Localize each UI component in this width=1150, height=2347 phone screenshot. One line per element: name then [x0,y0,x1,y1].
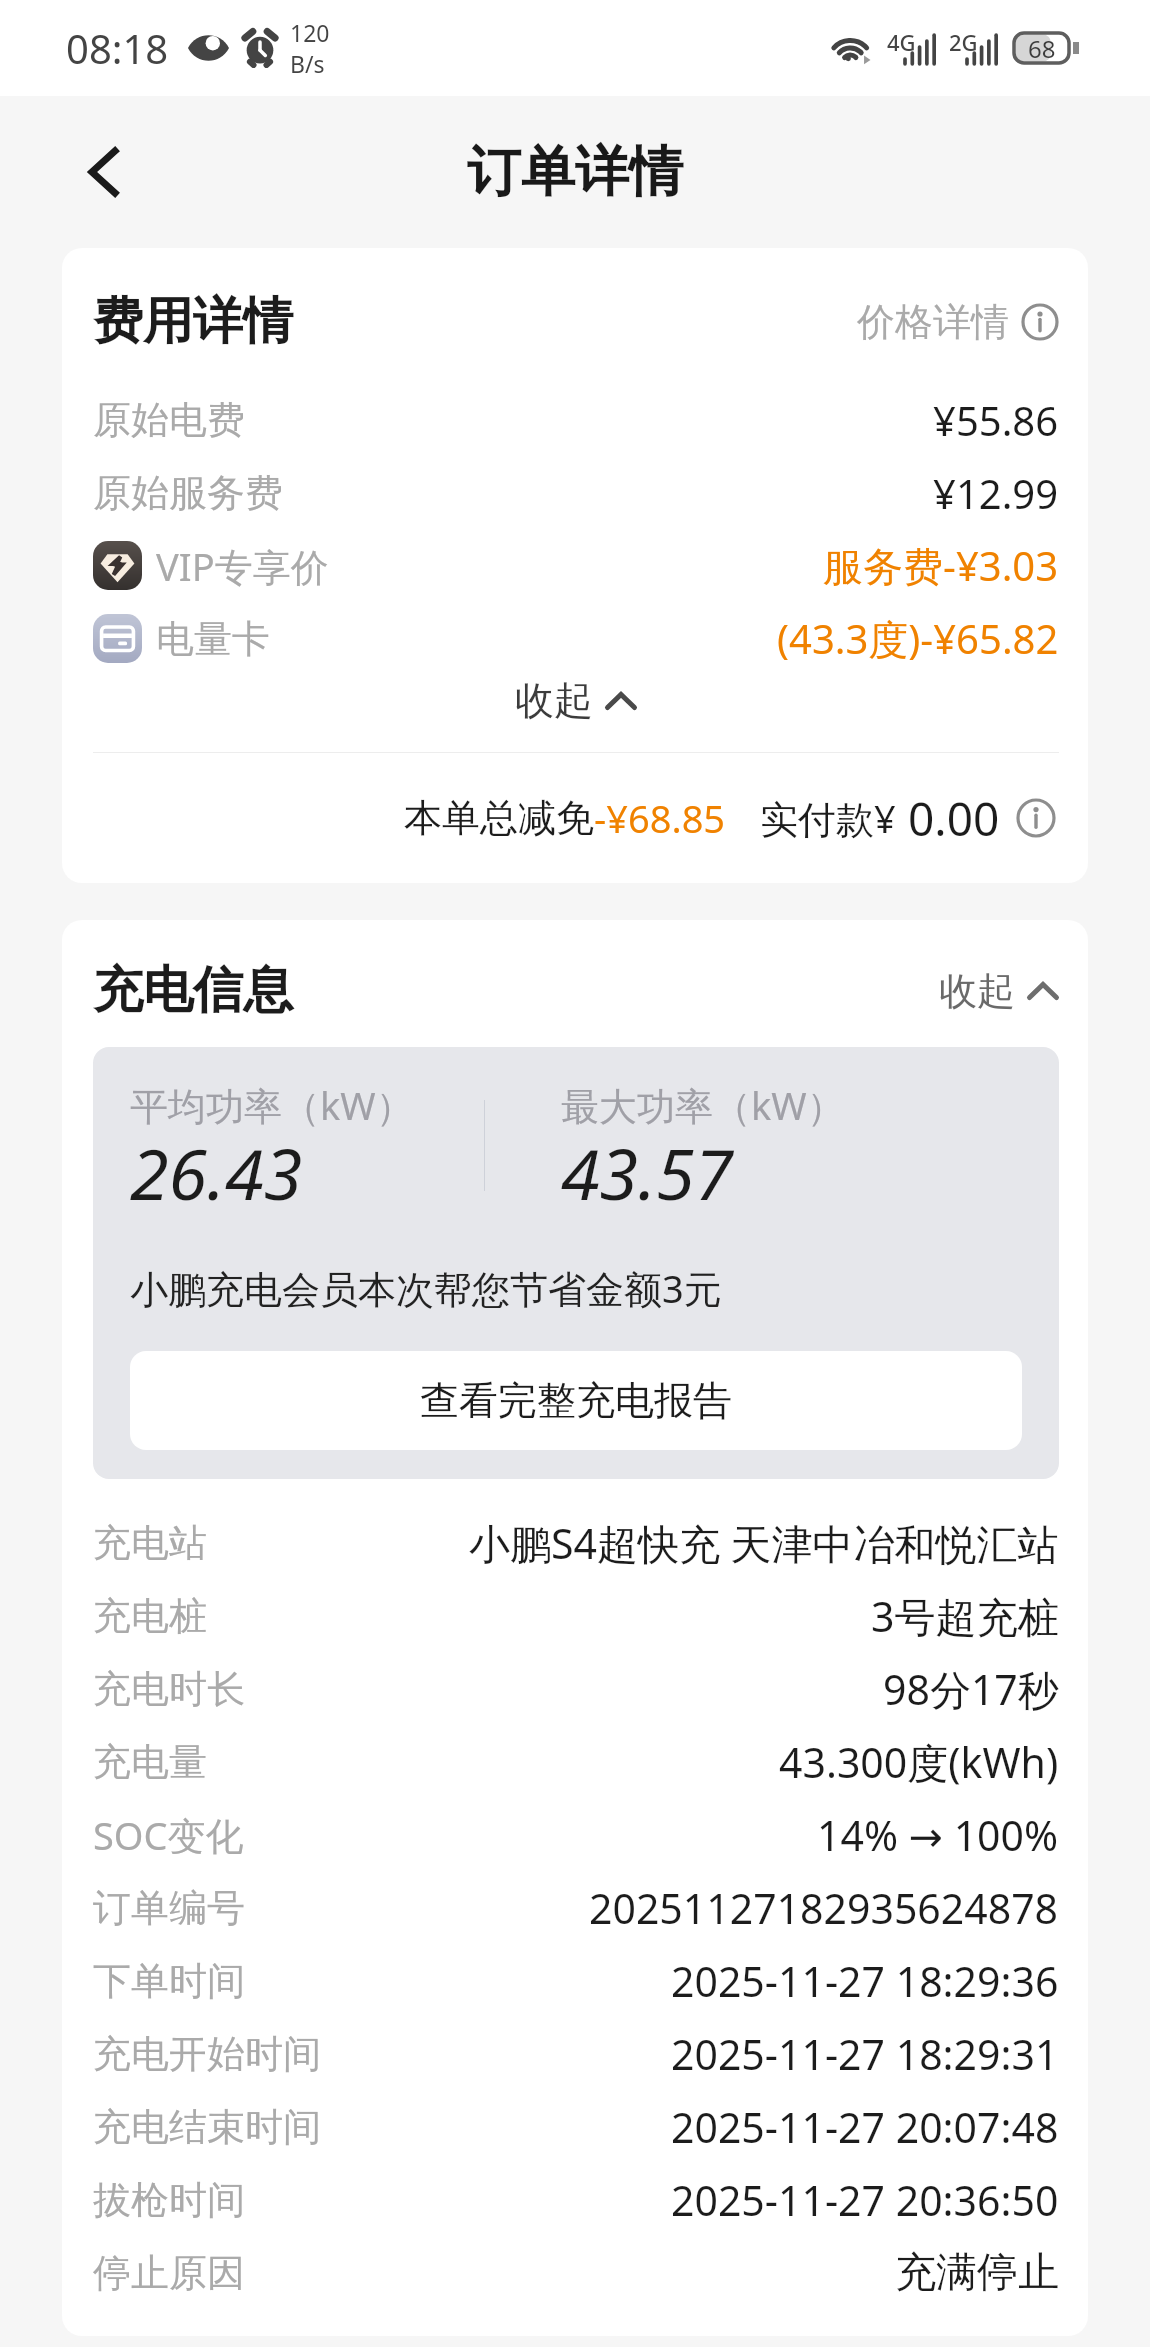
staticText: 停止原因 [93,2249,245,2297]
staticText: 服务费-¥3.03 [823,538,1059,593]
staticText: -¥68.85 [594,792,726,844]
button[interactable]: 查看完整充电报告 [130,1351,1022,1450]
staticText: 最大功率（kW） [561,1079,845,1131]
button[interactable]: 付款说明 [1016,798,1056,838]
staticText: 费用详情 [93,290,293,353]
staticText: 14% → 100% [817,1807,1059,1863]
staticText: 充电站 [93,1519,207,1567]
staticText: 充电量 [93,1738,207,1786]
staticText: 43.300度(kWh) [779,1734,1059,1790]
staticText: 电量卡 [156,615,270,663]
staticText: 68 [1028,32,1056,65]
staticText: B/s [290,48,325,79]
staticText: (43.3度)-¥65.82 [777,611,1059,666]
staticText: 120 [290,17,330,48]
staticText: 小鹏S4超快充 天津中冶和悦汇站 [469,1515,1059,1571]
button[interactable]: 收起 [93,675,1059,726]
staticText: 98分17秒 [883,1661,1059,1717]
staticText: 4G [887,27,916,57]
button[interactable]: 充电桩 [93,1579,1059,1652]
staticText: 3号超充桩 [871,1588,1059,1644]
staticText: ¥12.99 [933,466,1059,520]
staticText: 小鹏充电会员本次帮您节省金额3元 [130,1262,722,1314]
staticText: 2G [949,27,978,57]
staticText: 充电开始时间 [93,2030,321,2078]
button[interactable]: 充电开始时间 [93,2017,1059,2090]
staticText: 充电信息 [93,959,293,1022]
staticText: 43.57 [561,1125,734,1220]
button[interactable]: SOC变化 [93,1798,1059,1871]
staticText: 2025-11-27 20:36:50 [671,2172,1059,2228]
staticText: 价格详情 [857,298,1009,346]
button[interactable]: 充电结束时间 [93,2090,1059,2163]
staticText: 充电时长 [93,1665,245,1713]
staticText: 08:18 [66,21,169,75]
staticText: 收起 [939,967,1015,1015]
button[interactable]: 充电时长 [93,1652,1059,1725]
staticText: 26.43 [130,1125,303,1220]
staticText: 20251127182935624878 [589,1880,1059,1936]
staticText: 订单详情 [467,138,683,206]
staticText: 收起 [515,676,593,725]
staticText: 充电结束时间 [93,2103,321,2151]
staticText: 平均功率（kW） [130,1079,414,1131]
staticText: 充满停止 [895,2247,1059,2299]
staticText: 原始服务费 [93,469,283,517]
button[interactable]: 拔枪时间 [93,2163,1059,2236]
staticText: 订单编号 [93,1884,245,1932]
staticText: 查看完整充电报告 [420,1376,732,1425]
button[interactable]: 充电量 [93,1725,1059,1798]
staticText: 0.00 [908,787,1000,850]
staticText: 充电桩 [93,1592,207,1640]
button[interactable]: 订单编号 [93,1871,1059,1944]
staticText: 拔枪时间 [93,2176,245,2224]
staticText: VIP专享价 [156,540,329,592]
button[interactable]: 停止原因 [93,2236,1059,2309]
staticText: 2025-11-27 18:29:31 [671,2026,1059,2082]
staticText: 本单总减免 [404,794,594,842]
staticText: 下单时间 [93,1957,245,2005]
staticText: SOC变化 [93,1809,244,1861]
button[interactable]: 价格详情 [857,298,1059,346]
button[interactable]: 下单时间 [93,1944,1059,2017]
button[interactable]: 充电站 [93,1506,1059,1579]
button[interactable]: 收起 [939,967,1059,1015]
staticText: ¥55.86 [933,393,1059,447]
staticText: 2025-11-27 20:07:48 [671,2099,1059,2155]
staticText: 2025-11-27 18:29:36 [671,1953,1059,2009]
staticText: 实付款¥ [760,792,896,844]
button[interactable]: Back [62,123,146,221]
staticText: 原始电费 [93,396,245,444]
